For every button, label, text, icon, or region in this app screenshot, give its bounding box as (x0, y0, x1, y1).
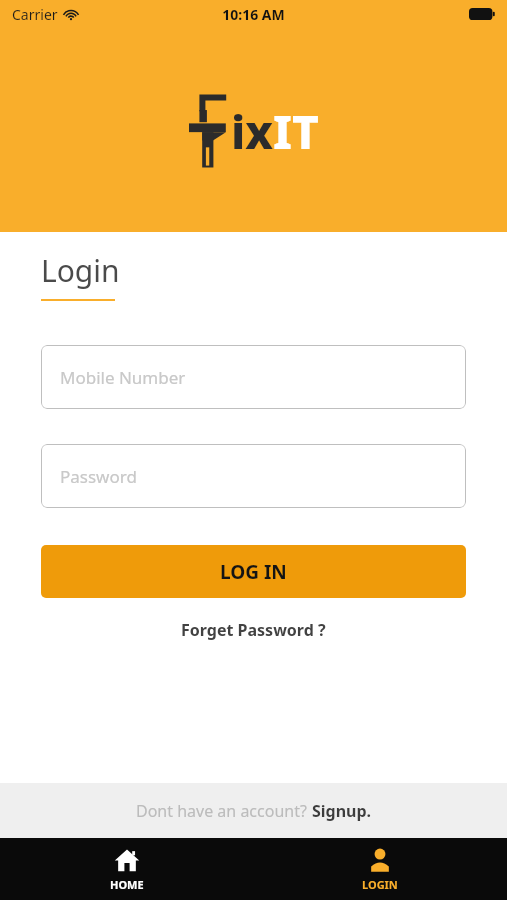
button[interactable]: LOGIN (253, 847, 507, 892)
staticText: Carrier (12, 5, 58, 24)
button[interactable]: Password (41, 444, 466, 508)
staticText: Password (60, 465, 137, 488)
staticText: IT (273, 100, 319, 163)
staticText: Forget Password ? (181, 619, 326, 641)
button[interactable]: Mobile Number (41, 345, 466, 409)
staticText: 10:16 AM (222, 5, 285, 24)
staticText: Signup. (312, 800, 372, 822)
button[interactable]: LOG IN (41, 545, 466, 598)
button[interactable]: Forget Password ? (173, 616, 334, 644)
staticText: Mobile Number (60, 366, 186, 389)
staticText: LOG IN (220, 559, 287, 585)
button[interactable]: Dont have an account? (0, 783, 507, 838)
staticText: Dont have an account? (136, 800, 312, 822)
button[interactable]: HOME (0, 847, 253, 892)
staticText: ix (231, 100, 273, 163)
staticText: Login (41, 250, 120, 291)
staticText: HOME (110, 877, 144, 892)
staticText: LOGIN (362, 877, 398, 892)
